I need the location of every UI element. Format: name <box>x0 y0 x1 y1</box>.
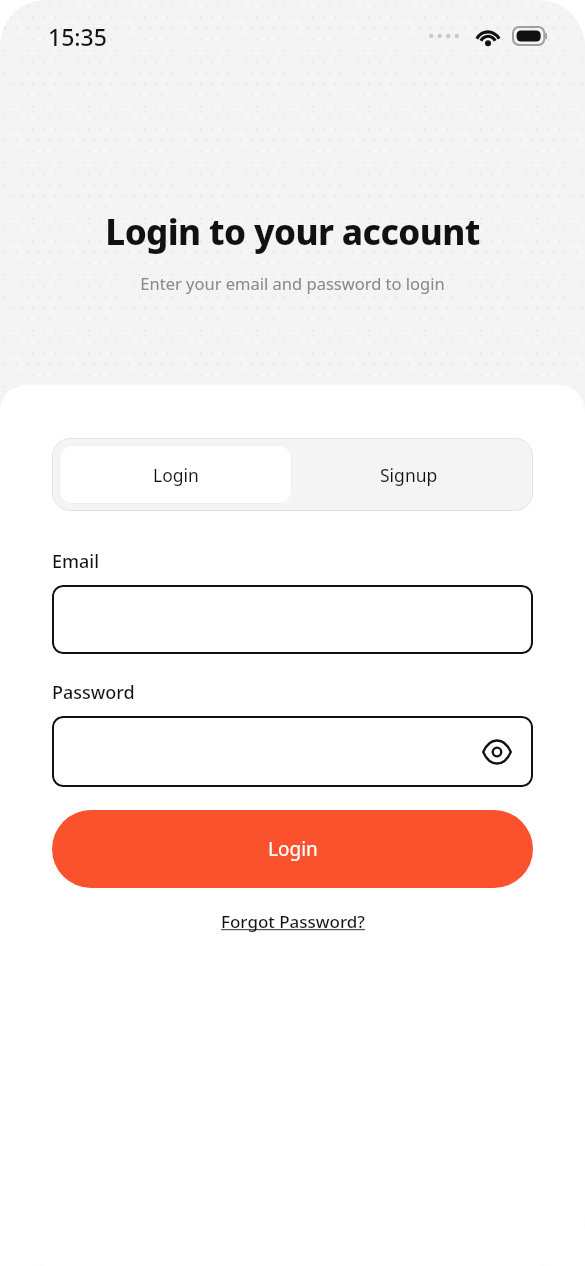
button[interactable]: Login <box>52 810 533 888</box>
button[interactable]: Forgot Password? <box>215 907 371 936</box>
button[interactable]: Login <box>59 445 292 504</box>
button[interactable]: Show password <box>477 732 517 772</box>
staticText: Login <box>153 463 199 487</box>
staticText: Forgot Password? <box>221 910 365 933</box>
staticText: Login <box>268 836 318 862</box>
staticText: Password <box>52 680 135 705</box>
button[interactable]: Signup <box>292 445 526 504</box>
staticText: 15:35 <box>48 21 107 52</box>
button[interactable]: Show password <box>52 716 533 787</box>
button[interactable] <box>52 585 533 654</box>
staticText: Signup <box>380 463 438 487</box>
staticText: Email <box>52 549 100 574</box>
staticText: Login to your account <box>105 208 480 256</box>
staticText: Enter your email and password to login <box>140 272 445 294</box>
